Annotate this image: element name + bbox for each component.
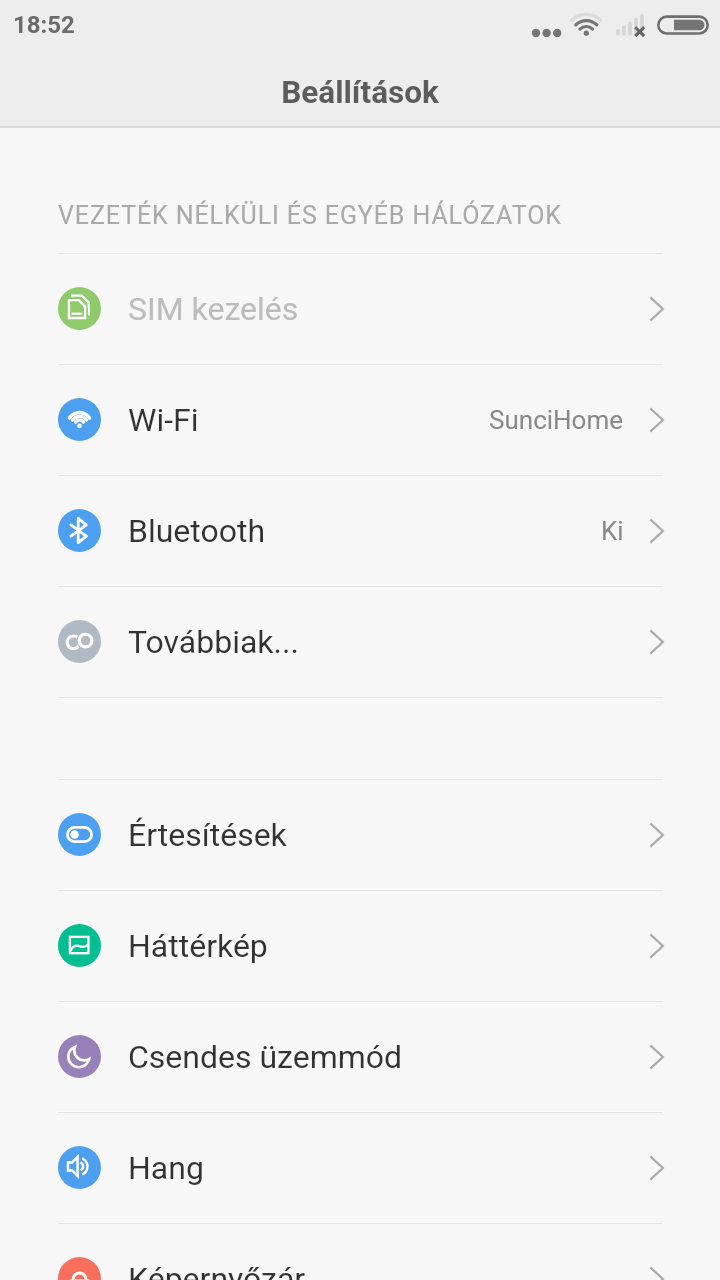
staticText: Csendes üzemmód (128, 1038, 403, 1076)
staticText: Bluetooth (128, 512, 266, 550)
button[interactable]: Értesítések (0, 780, 720, 889)
button[interactable]: Wi-Fi (0, 365, 720, 474)
staticText: Háttérkép (128, 927, 268, 965)
staticText: 18:52 (13, 11, 75, 39)
staticText: SIM kezelés (128, 290, 299, 328)
staticText: Képernyőzár (128, 1260, 306, 1280)
staticText: Értesítések (128, 816, 287, 854)
staticText: SunciHome (489, 405, 624, 435)
staticText: Wi-Fi (128, 401, 199, 439)
button[interactable]: Képernyőzár (0, 1224, 720, 1280)
staticText: VEZETÉK NÉLKÜLI ÉS EGYÉB HÁLÓZATOK (58, 201, 562, 230)
button[interactable]: Továbbiak... (0, 587, 720, 696)
button[interactable]: Csendes üzemmód (0, 1002, 720, 1111)
staticText: Hang (128, 1149, 204, 1187)
button[interactable]: SIM kezelés (0, 254, 720, 363)
staticText: Ki (601, 516, 624, 546)
button[interactable]: Bluetooth (0, 476, 720, 585)
staticText: Továbbiak... (128, 623, 299, 661)
staticText: Beállítások (281, 74, 439, 111)
button[interactable]: Hang (0, 1113, 720, 1222)
button[interactable]: Háttérkép (0, 891, 720, 1000)
